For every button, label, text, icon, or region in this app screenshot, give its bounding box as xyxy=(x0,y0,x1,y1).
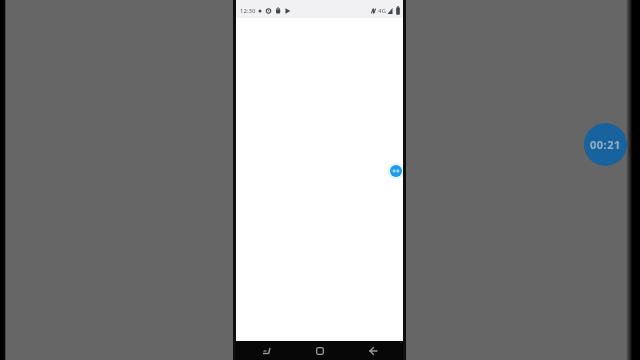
button[interactable] xyxy=(308,341,332,360)
staticText: 12:30 xyxy=(240,7,256,15)
button[interactable] xyxy=(390,165,402,177)
button[interactable]: 00:21 xyxy=(584,123,627,166)
staticText: 00:21 xyxy=(590,137,621,152)
button[interactable] xyxy=(255,341,278,360)
staticText: 4G xyxy=(378,7,386,15)
button[interactable] xyxy=(361,341,385,360)
